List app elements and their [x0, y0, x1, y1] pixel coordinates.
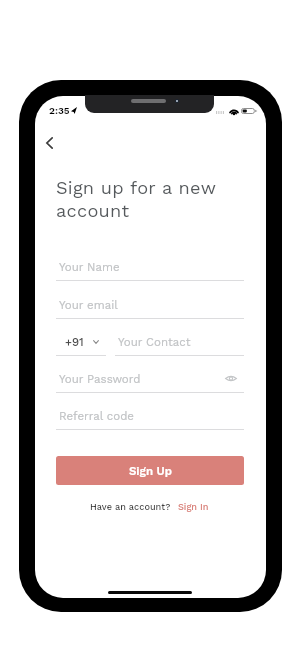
button[interactable]: Sign In — [178, 501, 209, 512]
staticText: Your email — [59, 298, 118, 311]
button[interactable]: Back — [40, 130, 66, 156]
button[interactable]: Your Name — [56, 252, 244, 281]
button[interactable]: Referral code — [56, 401, 244, 430]
staticText: 2:35 — [49, 105, 70, 117]
button[interactable]: Your Contact — [115, 327, 244, 356]
staticText: Have an account? — [90, 501, 171, 512]
button[interactable]: Sign Up — [56, 456, 244, 485]
staticText: Sign up for a new account — [56, 177, 217, 222]
staticText: Referral code — [59, 409, 134, 422]
staticText: +91 — [65, 335, 84, 348]
button[interactable]: Your email — [56, 290, 244, 319]
staticText: Sign Up — [129, 464, 172, 477]
staticText: Your Contact — [118, 335, 191, 348]
button[interactable]: Country code +91 — [56, 327, 106, 356]
staticText: Your Name — [59, 260, 120, 273]
staticText: Sign In — [178, 501, 209, 512]
button[interactable]: Your Password — [56, 364, 244, 393]
staticText: Your Password — [59, 372, 141, 385]
